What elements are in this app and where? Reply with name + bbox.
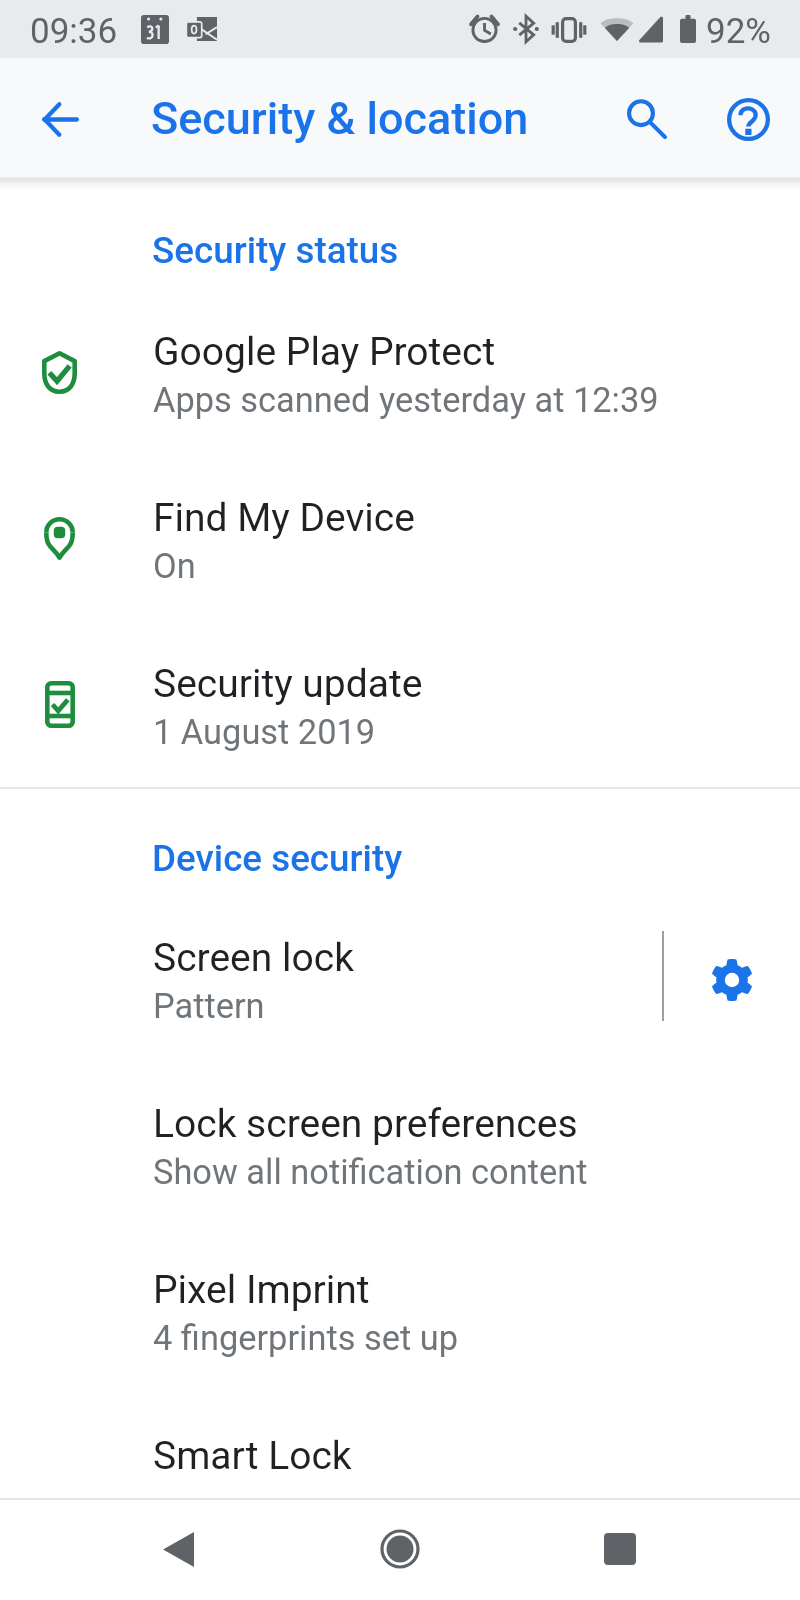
staticText: Lock screen preferences bbox=[153, 1101, 578, 1147]
button[interactable]: Search bbox=[611, 83, 683, 155]
staticText: Pattern bbox=[153, 986, 265, 1026]
button[interactable]: Navigate up bbox=[24, 83, 96, 155]
staticText: Security & location bbox=[151, 92, 529, 145]
staticText: 09:36 bbox=[30, 11, 118, 52]
button[interactable]: Screen lock settings bbox=[684, 932, 780, 1028]
button[interactable]: Security update bbox=[0, 628, 800, 760]
button[interactable]: Home bbox=[360, 1509, 440, 1589]
staticText: Smart Lock bbox=[153, 1433, 352, 1479]
staticText: Google Play Protect bbox=[153, 329, 496, 375]
staticText: Security status bbox=[152, 229, 399, 272]
staticText: Apps scanned yesterday at 12:39 bbox=[153, 380, 659, 420]
button[interactable]: Help bbox=[712, 83, 784, 155]
button[interactable]: Google Play Protect bbox=[0, 296, 800, 428]
staticText: 1 August 2019 bbox=[153, 712, 376, 752]
button[interactable]: Screen lock bbox=[0, 902, 640, 1034]
staticText: Find My Device bbox=[153, 495, 415, 541]
staticText: 4 fingerprints set up bbox=[153, 1318, 458, 1358]
button[interactable]: Lock screen preferences bbox=[0, 1068, 800, 1200]
button[interactable]: Back bbox=[138, 1509, 218, 1589]
button[interactable]: Pixel Imprint bbox=[0, 1234, 800, 1366]
staticText: Screen lock bbox=[153, 935, 354, 981]
staticText: Pixel Imprint bbox=[153, 1267, 370, 1313]
button[interactable]: Smart Lock bbox=[0, 1400, 800, 1490]
staticText: 92% bbox=[706, 11, 771, 52]
staticText: Show all notification content bbox=[153, 1152, 588, 1192]
staticText: Security update bbox=[153, 661, 423, 707]
button[interactable]: Recent apps bbox=[580, 1509, 660, 1589]
button[interactable]: Find My Device bbox=[0, 462, 800, 594]
staticText: On bbox=[153, 546, 196, 586]
staticText: Device security bbox=[152, 837, 403, 880]
